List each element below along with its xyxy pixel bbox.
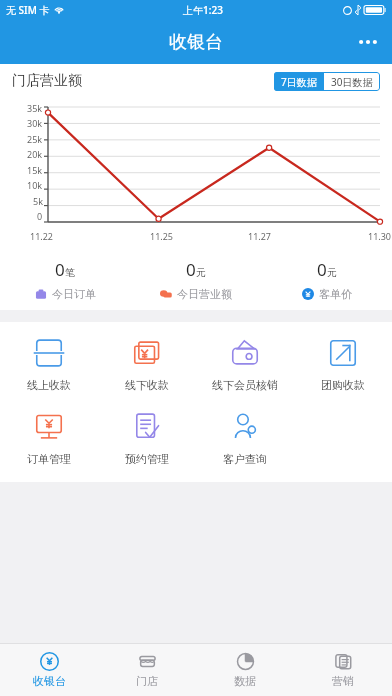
button[interactable]: 线上收款 — [0, 330, 98, 398]
staticText: 团购收款 — [321, 378, 365, 392]
staticText: 35k — [27, 102, 43, 114]
button[interactable]: 团购收款 — [294, 330, 392, 398]
staticText: 11.25 — [150, 230, 174, 242]
staticText: 0 — [55, 258, 65, 281]
button[interactable]: 门店 — [98, 644, 196, 696]
staticText: 上午1:23 — [183, 3, 223, 17]
staticText: 线上收款 — [27, 378, 71, 392]
button[interactable]: 0 — [130, 248, 261, 310]
staticText: 今日订单 — [52, 287, 96, 301]
button[interactable]: 收银台 — [0, 644, 98, 696]
staticText: 0 — [317, 258, 327, 281]
staticText: 元 — [327, 266, 337, 279]
staticText: 客户查询 — [223, 452, 267, 466]
button[interactable]: 7日数据 — [274, 72, 324, 91]
staticText: 15k — [27, 164, 43, 176]
button[interactable]: 0 — [0, 248, 130, 310]
staticText: 11.30 — [368, 230, 392, 242]
button[interactable]: 30日数据 — [324, 72, 380, 91]
button[interactable]: 预约管理 — [98, 404, 196, 472]
staticText: 订单管理 — [27, 452, 71, 466]
staticText: 7日数据 — [281, 75, 317, 89]
staticText: 营销 — [332, 674, 354, 688]
button[interactable]: 线下收款 — [98, 330, 196, 398]
button[interactable]: More options — [344, 20, 392, 64]
staticText: 5k — [33, 195, 43, 207]
staticText: 20k — [27, 148, 43, 160]
button[interactable]: 数据 — [196, 644, 294, 696]
staticText: 11.27 — [248, 230, 272, 242]
button[interactable]: 订单管理 — [0, 404, 98, 472]
staticText: 0 — [186, 258, 196, 281]
staticText: 25k — [27, 133, 43, 145]
button[interactable]: 线下会员核销 — [196, 330, 294, 398]
staticText: 收银台 — [169, 31, 223, 54]
staticText: 笔 — [65, 266, 75, 279]
staticText: 10k — [27, 179, 43, 191]
staticText: 无 SIM 卡 — [6, 3, 50, 17]
staticText: 数据 — [234, 674, 256, 688]
button[interactable]: 0 — [261, 248, 392, 310]
button[interactable]: 客户查询 — [196, 404, 294, 472]
staticText: 客单价 — [319, 287, 352, 301]
staticText: 预约管理 — [125, 452, 169, 466]
staticText: 线下会员核销 — [212, 378, 278, 392]
staticText: 元 — [196, 266, 206, 279]
staticText: 收银台 — [33, 674, 66, 688]
button[interactable]: 营销 — [294, 644, 392, 696]
staticText: 门店营业额 — [12, 72, 82, 90]
staticText: 今日营业额 — [177, 287, 232, 301]
staticText: 线下收款 — [125, 378, 169, 392]
staticText: 门店 — [136, 674, 158, 688]
staticText: 30日数据 — [331, 75, 373, 89]
staticText: 0 — [37, 210, 43, 222]
staticText: 11.22 — [30, 230, 54, 242]
staticText: 30k — [27, 117, 43, 129]
